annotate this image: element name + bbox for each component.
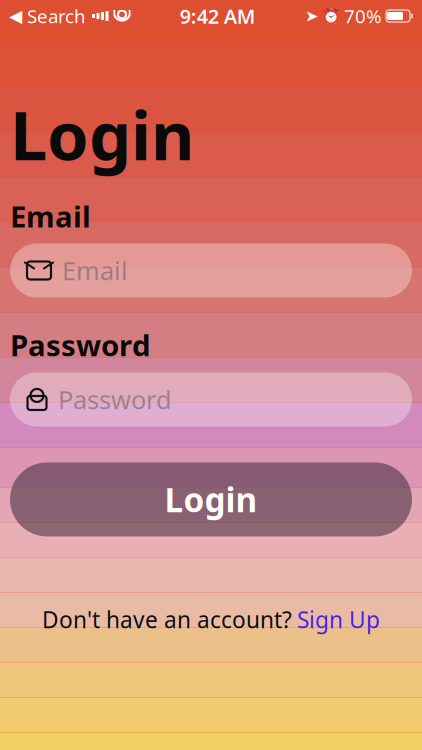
staticText: ◀ — [9, 6, 22, 26]
staticText: Password — [10, 325, 151, 364]
staticText: ⏰ — [322, 8, 340, 24]
staticText: 70% — [344, 4, 382, 28]
staticText: Email — [10, 196, 91, 235]
staticText: ➤ — [305, 7, 318, 25]
staticText: Sign Up — [297, 604, 380, 634]
staticText: Login — [10, 90, 194, 178]
button[interactable]: Login — [10, 462, 412, 536]
staticText: Don't have an account? — [42, 604, 292, 634]
button[interactable]: Password — [10, 372, 412, 426]
staticText: Search — [22, 4, 86, 28]
staticText: 9:42 AM — [180, 3, 256, 29]
staticText: Email — [62, 254, 128, 287]
staticText: Login — [164, 477, 257, 522]
staticText: Password — [58, 383, 172, 416]
button[interactable]: Don't have an account? — [32, 598, 390, 640]
button[interactable]: Email — [10, 243, 412, 297]
